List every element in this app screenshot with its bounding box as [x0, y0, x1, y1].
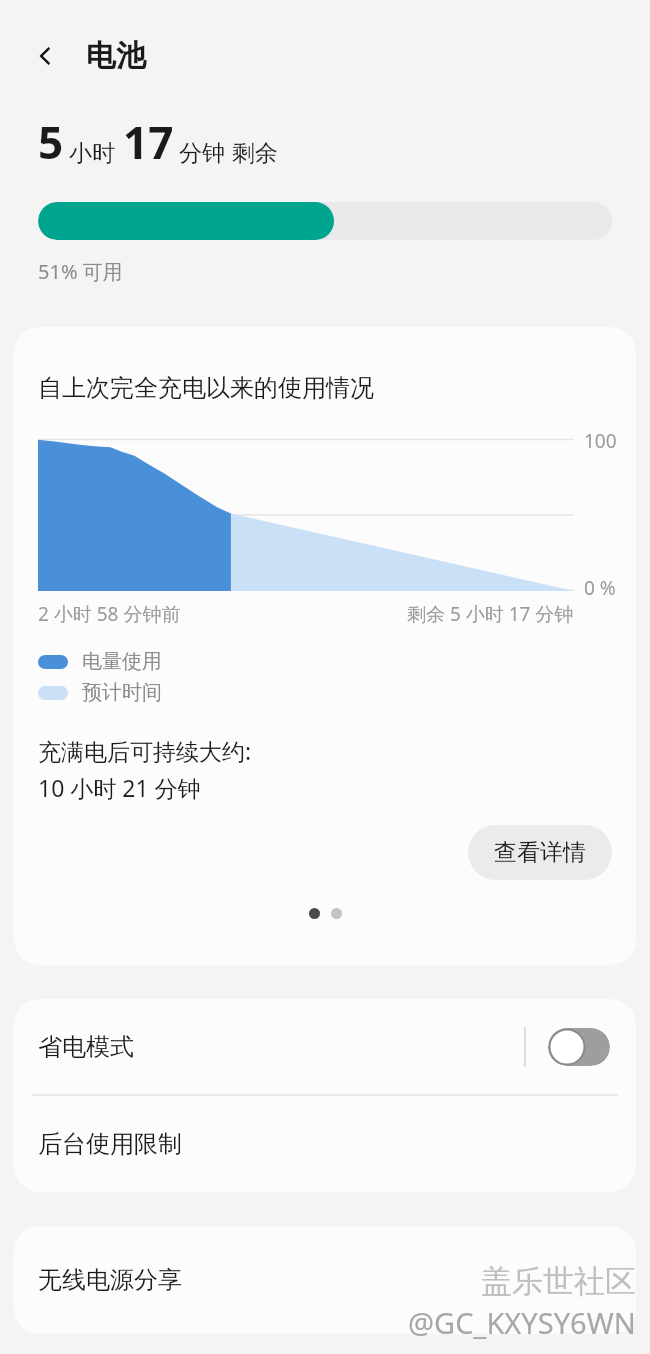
button[interactable]: 无线电源分享 [14, 1226, 636, 1334]
button[interactable]: 省电模式开关 [548, 1028, 610, 1066]
staticText: 剩余 [232, 139, 278, 168]
staticText: 5 [38, 112, 64, 172]
staticText: 电量使用 [82, 649, 162, 674]
staticText: 预计时间 [82, 680, 162, 705]
staticText: 小时 [69, 139, 115, 168]
staticText: 51% 可用 [38, 258, 123, 285]
staticText: 2 小时 58 分钟前 [38, 601, 181, 627]
staticText: 自上次完全充电以来的使用情况 [38, 373, 374, 403]
staticText: 100 [584, 428, 617, 454]
button[interactable]: 返回 [22, 32, 70, 80]
button[interactable]: 省电模式 [14, 999, 636, 1094]
staticText: 17 [123, 112, 174, 172]
button[interactable]: 查看详情 [468, 825, 612, 880]
staticText: 剩余 5 小时 17 分钟 [407, 601, 574, 627]
button[interactable]: 后台使用限制 [14, 1096, 636, 1192]
staticText: 盖乐世社区 [481, 1262, 636, 1301]
staticText: 分钟 [179, 139, 225, 168]
staticText: 电池 [86, 37, 146, 75]
staticText: 后台使用限制 [38, 1129, 182, 1159]
staticText: 查看详情 [494, 838, 586, 867]
staticText: 省电模式 [38, 1032, 524, 1062]
staticText: @GC_KXYSY6WN [408, 1303, 636, 1342]
staticText: 10 小时 21 分钟 [38, 772, 201, 803]
staticText: 0 % [584, 575, 616, 601]
staticText: 充满电后可持续大约: [38, 735, 252, 766]
staticText: 无线电源分享 [38, 1265, 182, 1295]
